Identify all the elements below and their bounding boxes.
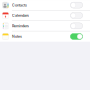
staticText: Notes bbox=[12, 34, 22, 39]
staticText: Calendars bbox=[12, 13, 29, 18]
staticText: Reminders bbox=[12, 24, 29, 28]
button[interactable]: Contacts bbox=[0, 0, 90, 10]
button[interactable]: Reminders bbox=[0, 21, 90, 31]
button[interactable]: Notes bbox=[0, 31, 90, 42]
button[interactable]: Calendars bbox=[0, 10, 90, 21]
staticText: Contacts bbox=[12, 3, 27, 7]
